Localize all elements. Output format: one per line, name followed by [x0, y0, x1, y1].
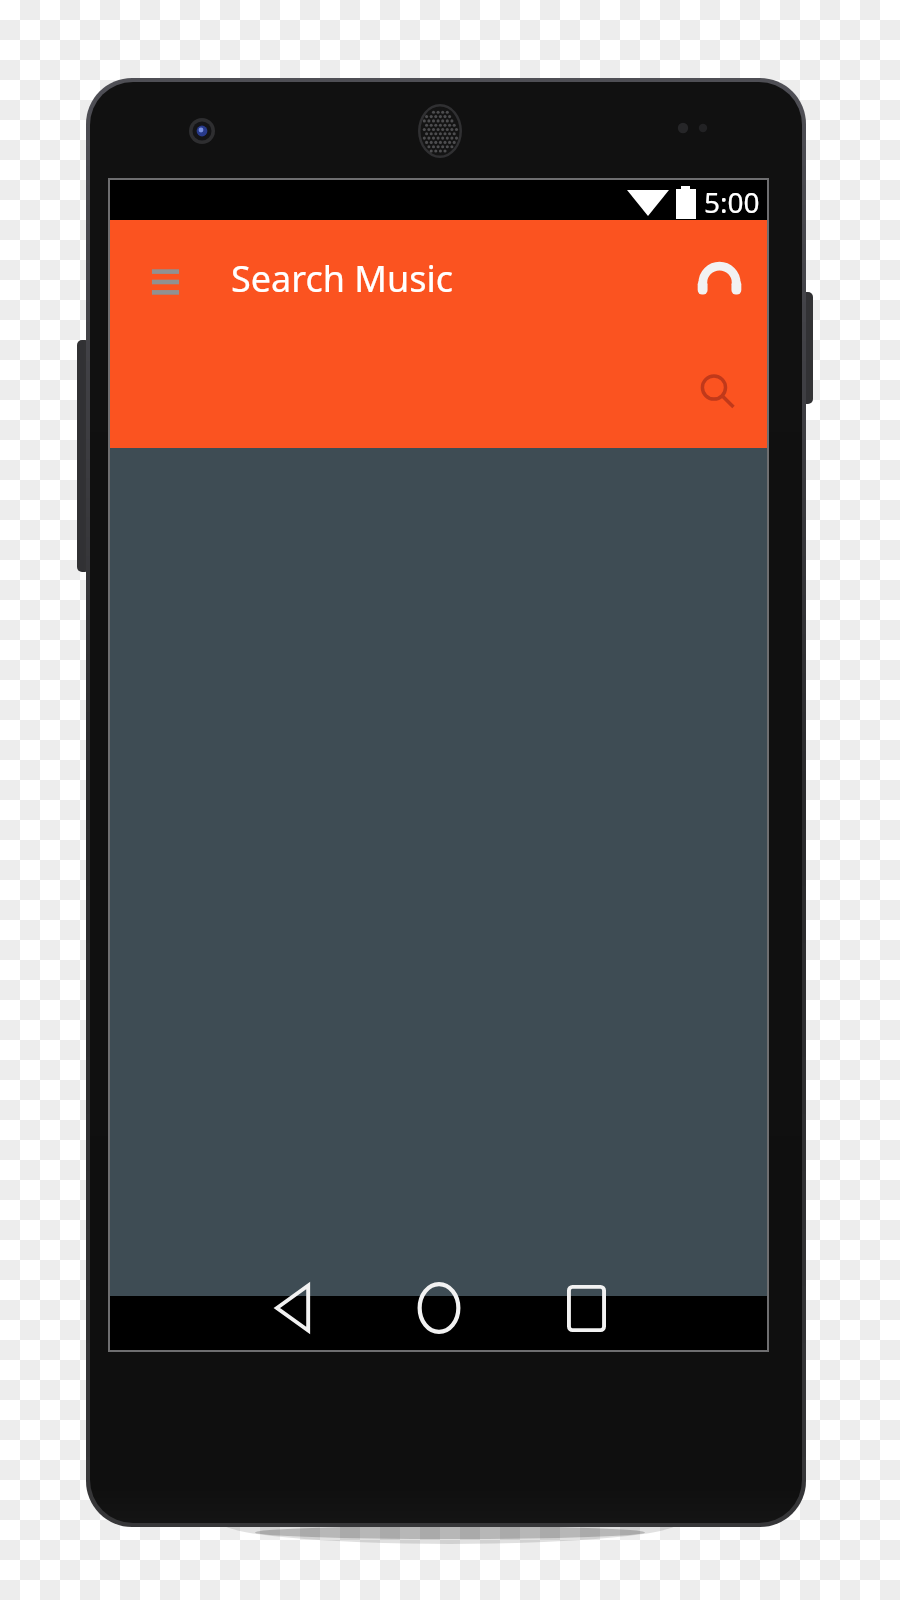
button[interactable]: Home [393, 1266, 485, 1350]
staticText: Search Music [231, 254, 454, 303]
button[interactable] [110, 448, 767, 1296]
staticText: 5:00 [704, 183, 760, 221]
button[interactable]: Now playing [685, 245, 753, 313]
button[interactable]: Search [687, 361, 751, 425]
button[interactable]: Open navigation menu [130, 245, 200, 315]
button[interactable]: Recent apps [540, 1266, 632, 1350]
button[interactable]: Back [247, 1266, 339, 1350]
